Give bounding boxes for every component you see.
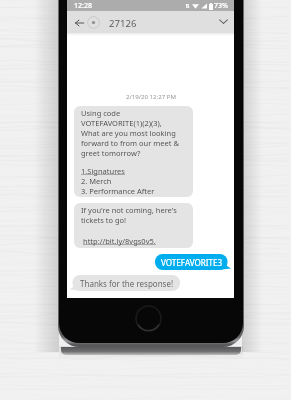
staticText: 2/19/20 12:27 PM (126, 92, 176, 100)
button[interactable]: If you're not coming, here's tickets to … (74, 203, 193, 248)
staticText: If you're not coming, here's tickets to … (81, 205, 177, 225)
staticText: 1.Signatures (81, 166, 125, 176)
staticText: Thanks for the response! (80, 278, 174, 289)
staticText: VOTEFAVORITE3 (161, 257, 223, 268)
button[interactable]: Thanks for the response! (73, 275, 181, 291)
button[interactable]: Expand conversation (214, 12, 232, 30)
staticText: Using code VOTEFAVORITE(1)(2)(3), What a… (81, 108, 179, 158)
button[interactable]: Using code VOTEFAVORITE(1)(2)(3), What a… (74, 106, 193, 197)
staticText: 73% (214, 1, 228, 11)
staticText: 2. Merch 3. Performance After (81, 176, 155, 196)
staticText: 27126 (109, 17, 137, 30)
staticText: http://bit.ly/8vgs0v5. (83, 236, 156, 246)
button[interactable]: Back (69, 13, 89, 33)
button[interactable]: VOTEFAVORITE3 (155, 254, 228, 270)
staticText: 12:28 (74, 1, 92, 11)
